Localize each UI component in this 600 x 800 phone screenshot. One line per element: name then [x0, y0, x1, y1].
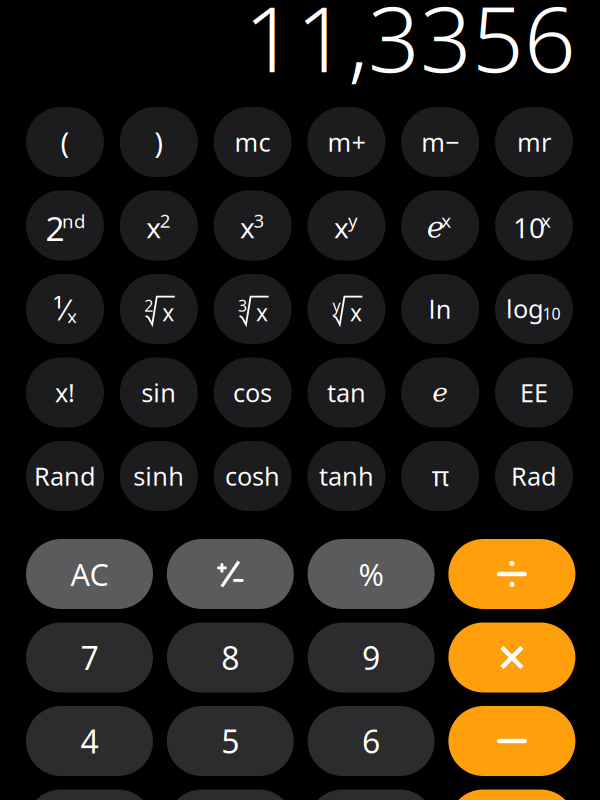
staticText: 11,3356: [244, 0, 576, 97]
staticText: 10: [542, 303, 560, 324]
button[interactable]: memory subtract: [401, 107, 479, 177]
staticText: 3: [238, 295, 247, 316]
staticText: e: [432, 377, 448, 408]
staticText: m−: [421, 125, 459, 159]
button[interactable]: cosine: [214, 357, 292, 427]
staticText: 5: [221, 720, 239, 762]
button[interactable]: natural logarithm: [401, 274, 479, 344]
button[interactable]: 1: [26, 789, 153, 800]
button[interactable]: all clear: [26, 539, 153, 609]
staticText: x: [334, 209, 349, 246]
staticText: x: [162, 297, 174, 327]
staticText: y: [332, 295, 340, 316]
button[interactable]: 9: [308, 622, 435, 692]
staticText: mr: [517, 125, 551, 159]
button[interactable]: memory add: [307, 107, 385, 177]
button[interactable]: 2: [167, 789, 294, 800]
button[interactable]: log base ten: [495, 274, 573, 344]
button[interactable]: random: [26, 441, 104, 511]
staticText: cosh: [225, 459, 280, 493]
button[interactable]: tangent: [307, 357, 385, 427]
staticText: x: [240, 209, 255, 246]
button[interactable]: 6: [308, 706, 435, 776]
staticText: x!: [55, 376, 75, 409]
staticText: 9: [362, 636, 380, 679]
button[interactable]: sine: [120, 357, 198, 427]
staticText: π: [432, 458, 449, 494]
button[interactable]: 5: [167, 706, 294, 776]
button[interactable]: plus minus: [167, 539, 294, 609]
staticText: x: [441, 208, 451, 233]
button[interactable]: x squared: [120, 190, 198, 260]
button[interactable]: y root of x: [307, 274, 385, 344]
staticText: sinh: [133, 459, 184, 493]
staticText: x: [541, 208, 551, 233]
staticText: sin: [141, 376, 176, 409]
button[interactable]: hyperbolic tangent: [307, 441, 385, 511]
staticText: 10: [513, 209, 545, 246]
button[interactable]: pi: [401, 441, 479, 511]
staticText: 2: [45, 206, 64, 250]
staticText: AC: [70, 554, 108, 594]
button[interactable]: multiply: [448, 622, 575, 692]
staticText: (: [60, 122, 69, 161]
staticText: ¹⁄ₓ: [53, 289, 77, 328]
button[interactable]: 3: [308, 789, 435, 800]
staticText: %: [359, 554, 384, 594]
button[interactable]: memory clear: [214, 107, 292, 177]
staticText: 2: [144, 295, 153, 316]
staticText: ln: [429, 292, 452, 326]
staticText: 6: [362, 720, 380, 762]
button[interactable]: 7: [26, 622, 153, 692]
staticText: EE: [520, 376, 548, 409]
button[interactable]: second: [26, 190, 104, 260]
button[interactable]: right parenthesis: [120, 107, 198, 177]
staticText: mc: [235, 125, 271, 159]
button[interactable]: square root of x: [120, 274, 198, 344]
button[interactable]: percent: [308, 539, 435, 609]
staticText: e: [427, 210, 444, 244]
staticText: log: [506, 292, 544, 325]
button[interactable]: euler's number: [401, 357, 479, 427]
button[interactable]: minus: [448, 706, 575, 776]
staticText: nd: [62, 209, 85, 233]
staticText: Rand: [34, 459, 96, 493]
staticText: x: [350, 297, 362, 327]
button[interactable]: divide: [448, 539, 575, 609]
button[interactable]: cube root of x: [214, 274, 292, 344]
button[interactable]: radians: [495, 441, 573, 511]
button[interactable]: e to the power x: [401, 190, 479, 260]
button[interactable]: x to the power y: [307, 190, 385, 260]
button[interactable]: hyperbolic sine: [120, 441, 198, 511]
button[interactable]: ten to the power x: [495, 190, 573, 260]
staticText: m+: [327, 125, 365, 159]
staticText: x: [146, 209, 161, 246]
staticText: x: [256, 297, 268, 327]
staticText: 8: [221, 636, 239, 679]
button[interactable]: 4: [26, 706, 153, 776]
staticText: y: [348, 208, 358, 233]
staticText: tanh: [319, 459, 374, 493]
button[interactable]: exponent: [495, 357, 573, 427]
staticText: 4: [80, 720, 98, 762]
staticText: 2: [160, 208, 171, 233]
button[interactable]: memory recall: [495, 107, 573, 177]
staticText: ): [154, 122, 163, 161]
staticText: 3: [254, 208, 265, 233]
button[interactable]: x cubed: [214, 190, 292, 260]
staticText: Rad: [511, 459, 557, 493]
staticText: cos: [233, 376, 272, 409]
button[interactable]: 8: [167, 622, 294, 692]
button[interactable]: hyperbolic cosine: [214, 441, 292, 511]
button[interactable]: one over x: [26, 274, 104, 344]
button[interactable]: factorial: [26, 357, 104, 427]
staticText: tan: [327, 376, 366, 409]
staticText: 7: [80, 636, 98, 679]
button[interactable]: plus: [448, 789, 575, 800]
button[interactable]: left parenthesis: [26, 107, 104, 177]
